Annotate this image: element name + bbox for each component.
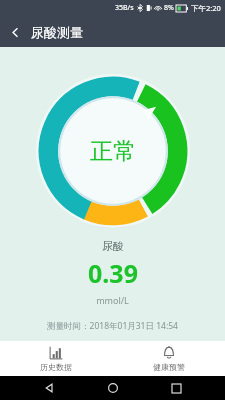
staticText: 尿酸 — [102, 239, 124, 253]
staticText: 正常 — [90, 137, 136, 166]
staticText: 历史数据 — [40, 362, 72, 372]
staticText: 尿酸测量 — [31, 24, 83, 40]
staticText: 8% — [164, 3, 174, 13]
button[interactable]: Back — [34, 376, 64, 400]
staticText: 0.39 — [88, 256, 138, 290]
button[interactable]: Back — [0, 17, 30, 47]
staticText: 测量时间：2018年01月31日 14:54 — [47, 320, 178, 332]
button[interactable]: 历史数据 — [0, 341, 112, 376]
button[interactable]: Home — [98, 376, 128, 400]
button[interactable]: Recents — [161, 376, 191, 400]
staticText: 下午2:20 — [191, 3, 221, 13]
staticText: 健康预警 — [153, 362, 185, 372]
button[interactable]: 健康预警 — [112, 341, 225, 376]
staticText: mmol/L — [96, 294, 129, 306]
staticText: 35B/s — [115, 3, 134, 13]
